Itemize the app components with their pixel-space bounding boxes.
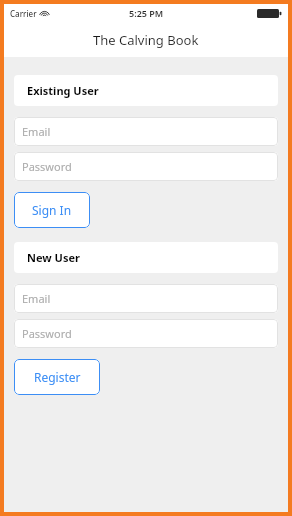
button[interactable]: Email [14, 284, 278, 313]
staticText: 5:25 PM [129, 7, 164, 19]
staticText: Carrier [10, 8, 37, 19]
staticText: Sign In [32, 202, 72, 218]
button[interactable]: Sign In [14, 192, 90, 228]
staticText: Existing User [27, 83, 99, 98]
button[interactable]: Register [14, 359, 100, 395]
button[interactable]: Email [14, 117, 278, 146]
button[interactable]: New User [14, 242, 278, 273]
staticText: Email [22, 291, 51, 306]
staticText: Email [22, 124, 51, 139]
button[interactable]: Password [14, 319, 278, 348]
staticText: Password [22, 326, 72, 341]
button[interactable]: Existing User [14, 75, 278, 106]
staticText: Register [34, 369, 81, 385]
button[interactable]: Password [14, 152, 278, 181]
staticText: The Calving Book [93, 31, 199, 49]
staticText: Password [22, 159, 72, 174]
staticText: New User [27, 250, 80, 265]
